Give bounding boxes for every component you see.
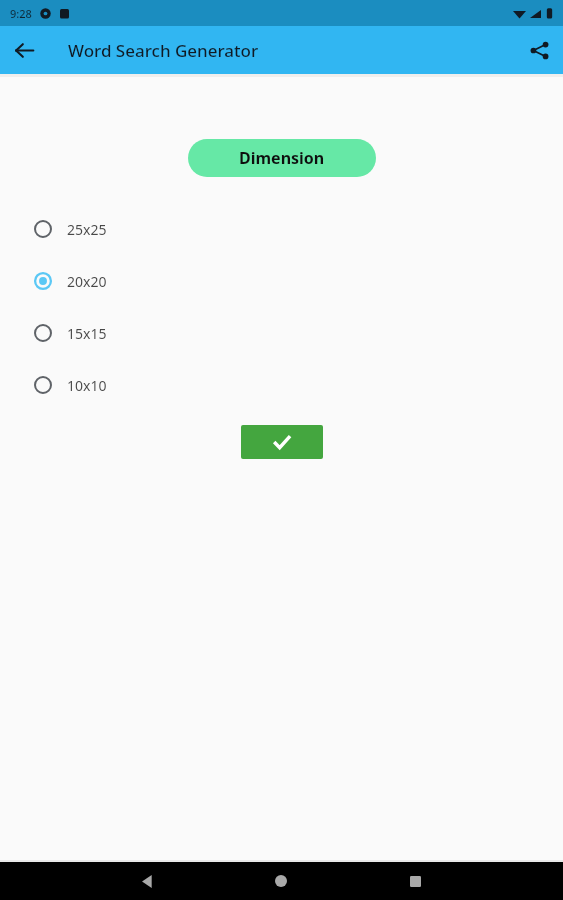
button[interactable]: Home [262, 862, 300, 900]
button[interactable]: Recents [396, 862, 434, 900]
staticText: Dimension [239, 147, 325, 169]
staticText: 20x20 [67, 272, 107, 291]
staticText: Word Search Generator [68, 39, 259, 62]
button[interactable]: 10x10 [0, 359, 563, 411]
staticText: 15x15 [67, 324, 107, 343]
button[interactable]: Dimension [188, 139, 376, 177]
button[interactable]: Share [515, 26, 563, 74]
staticText: 9:28 [10, 6, 32, 21]
button[interactable]: Back [128, 862, 166, 900]
button[interactable]: Back [0, 26, 48, 74]
button[interactable]: 25x25 [0, 203, 563, 255]
staticText: 25x25 [67, 220, 107, 239]
button[interactable]: 15x15 [0, 307, 563, 359]
button[interactable]: Confirm [241, 425, 323, 459]
button[interactable]: 20x20 [0, 255, 563, 307]
staticText: 10x10 [67, 376, 107, 395]
